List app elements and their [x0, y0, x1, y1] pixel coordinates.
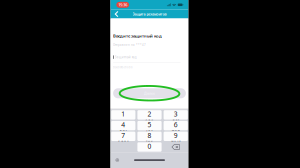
- staticText: 15:36: [118, 2, 127, 7]
- button[interactable]: 5: [137, 121, 162, 130]
- button[interactable]: 6: [164, 121, 188, 130]
- staticText: 6: [174, 120, 178, 129]
- staticText: M N O: [172, 128, 180, 132]
- staticText: 1: [121, 109, 125, 119]
- staticText: 9: [174, 131, 178, 140]
- staticText: 3: [174, 109, 178, 119]
- staticText: 0: [147, 142, 151, 151]
- button[interactable]: 3: [164, 110, 188, 120]
- staticText: 2: [147, 109, 151, 119]
- staticText: 4: [121, 120, 125, 129]
- staticText: P Q R S: [118, 139, 128, 143]
- button[interactable]: 1: [111, 110, 135, 120]
- staticText: A B C: [145, 118, 153, 121]
- staticText: Отправлен на ***47: [113, 43, 146, 47]
- staticText: 8: [147, 131, 151, 140]
- staticText: Выслать снова: [113, 65, 132, 69]
- button[interactable]: 8: [137, 132, 162, 141]
- button[interactable]: 7: [111, 132, 135, 141]
- button[interactable]: 0: [137, 142, 162, 152]
- staticText: 5: [147, 120, 151, 129]
- staticText: 7: [121, 131, 125, 140]
- staticText: D E F: [173, 118, 179, 121]
- staticText: Введите защитный код: [113, 33, 162, 39]
- staticText: Защитный код: [115, 55, 137, 59]
- staticText: W X Y Z: [171, 139, 180, 143]
- button[interactable]: Delete: [164, 142, 188, 152]
- button[interactable]: Далее: [113, 88, 186, 98]
- staticText: Защита реквизитов: [132, 11, 166, 17]
- staticText: T U V: [146, 139, 153, 143]
- staticText: J K L: [146, 128, 152, 132]
- staticText: Далее: [144, 91, 155, 96]
- button[interactable]: 9: [164, 132, 188, 141]
- button[interactable]: 2: [137, 110, 162, 120]
- staticText: G H I: [120, 128, 127, 132]
- button[interactable]: Back: [112, 10, 121, 18]
- button[interactable]: 4: [111, 121, 135, 130]
- button[interactable]: Keyboard language: [114, 156, 121, 164]
